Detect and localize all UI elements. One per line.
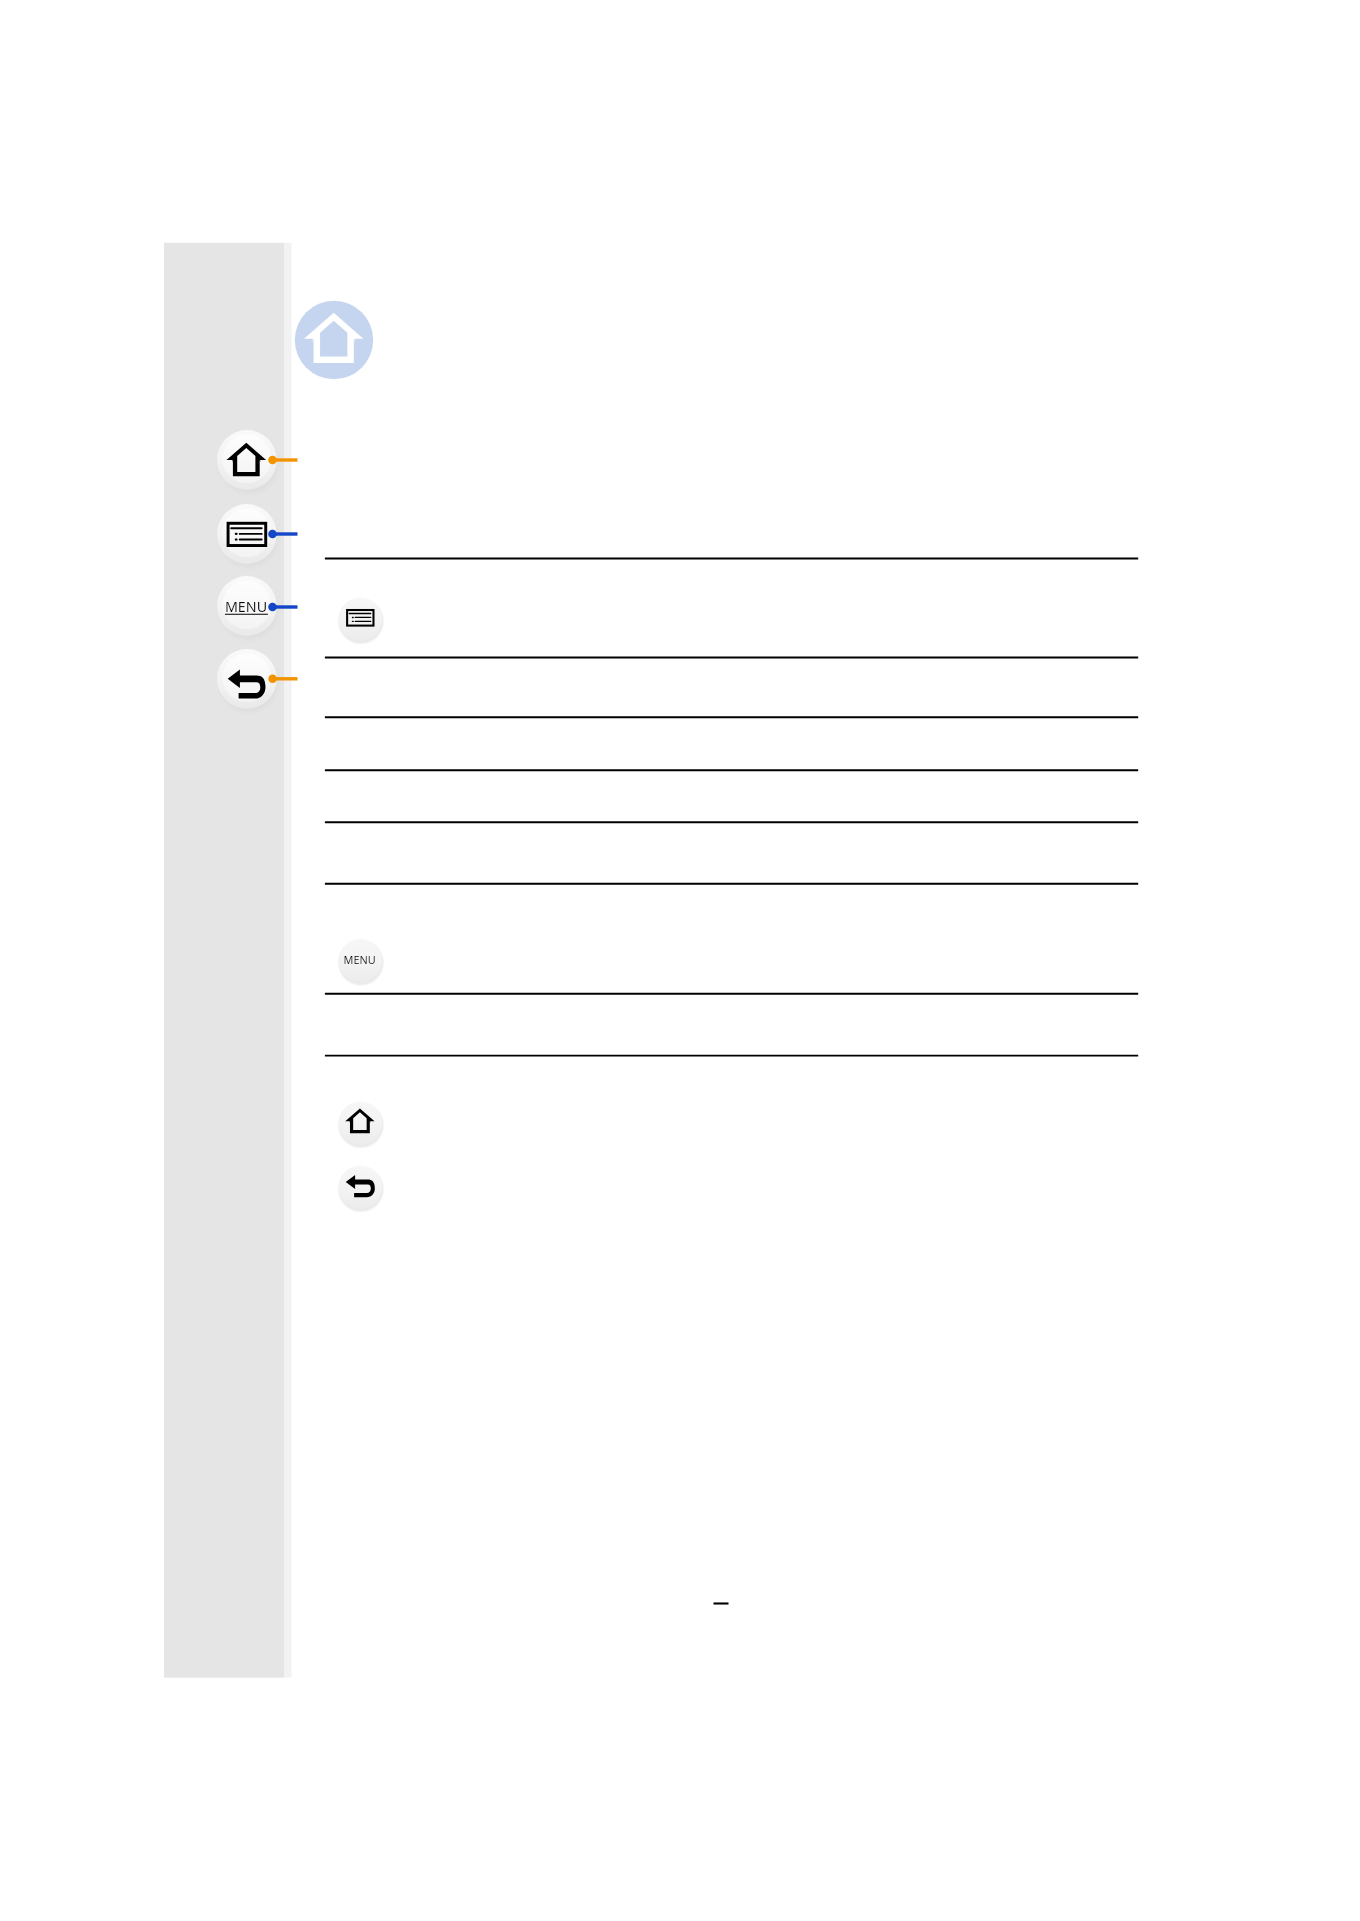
button[interactable]: MENU button [217,576,277,636]
button[interactable]: Return button [217,649,277,709]
button[interactable]: Home button [338,1101,383,1146]
button[interactable]: Display / menu information button [217,504,277,564]
button[interactable]: Display / menu information button [338,597,383,642]
button[interactable]: Return button [338,1165,383,1210]
button[interactable]: MENU button [338,938,383,983]
button[interactable]: Home button [217,430,277,490]
